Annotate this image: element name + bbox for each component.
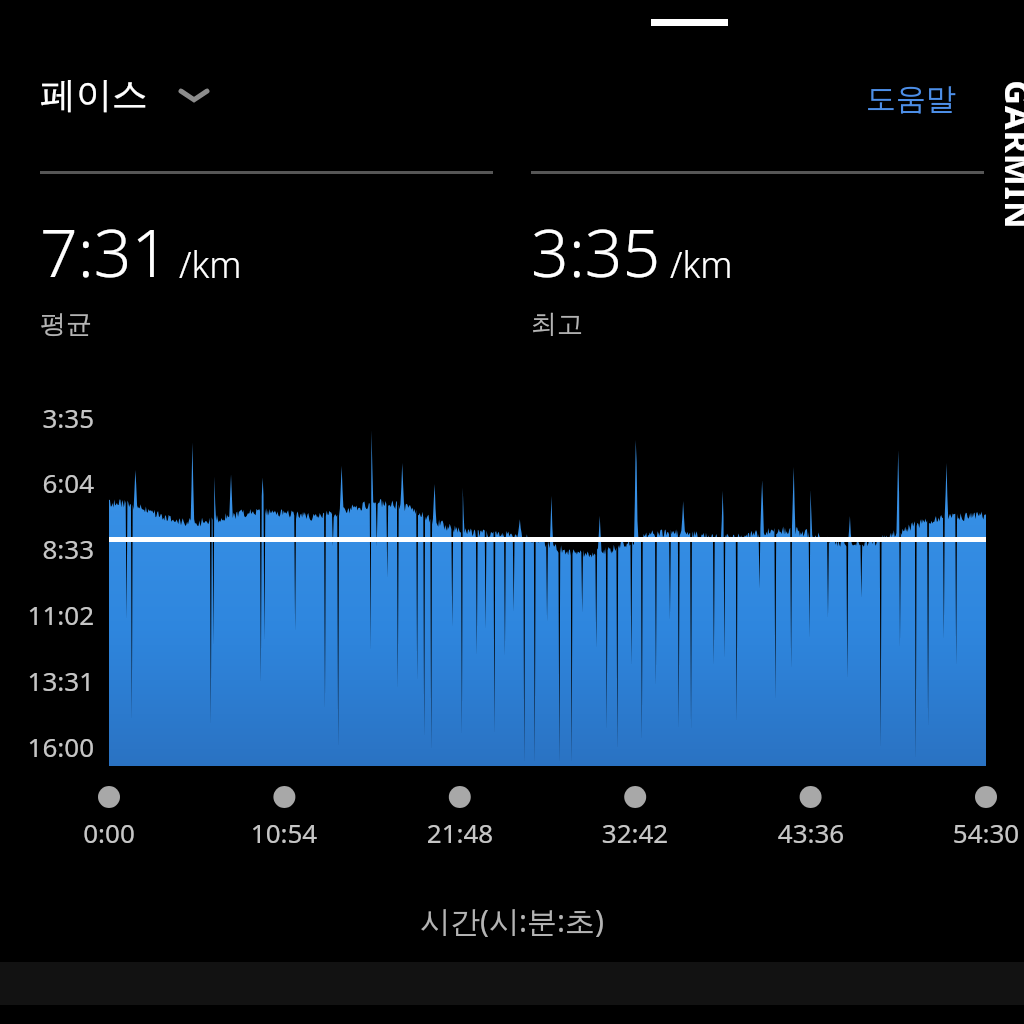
staticText: 0:00 xyxy=(39,815,179,850)
staticText: 최고 xyxy=(531,308,583,341)
staticText: 3:35 xyxy=(0,400,94,435)
staticText: GARMIN xyxy=(1001,75,1024,235)
staticText: 21:48 xyxy=(390,815,530,850)
staticText: 평균 xyxy=(40,308,92,341)
staticText: 7:31 xyxy=(40,206,170,296)
staticText: 16:00 xyxy=(0,729,94,764)
staticText: 페이스 xyxy=(40,72,148,117)
staticText: 13:31 xyxy=(0,663,94,698)
staticText: 3:35 xyxy=(531,206,661,296)
staticText: /km xyxy=(670,240,733,289)
staticText: 32:42 xyxy=(565,815,705,850)
button[interactable]: 페이스 xyxy=(40,72,222,117)
staticText: 10:54 xyxy=(214,815,354,850)
other: Change metric xyxy=(176,83,212,107)
staticText: 54:30 xyxy=(916,815,1024,850)
staticText: 시간(시:분:초) xyxy=(0,900,1024,941)
button[interactable]: 도움말 xyxy=(862,76,960,122)
staticText: /km xyxy=(179,240,242,289)
staticText: 11:02 xyxy=(0,597,94,632)
staticText: 8:33 xyxy=(0,531,94,566)
staticText: 6:04 xyxy=(0,465,94,500)
staticText: 43:36 xyxy=(741,815,881,850)
staticText: 도움말 xyxy=(866,80,956,118)
